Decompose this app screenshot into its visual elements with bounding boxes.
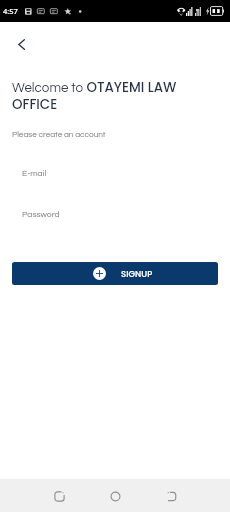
- button[interactable]: E-mail: [12, 160, 218, 186]
- staticText: E-mail: [22, 169, 47, 178]
- button[interactable]: SIGNUP: [12, 262, 218, 285]
- button[interactable]: Home: [100, 481, 130, 511]
- staticText: Welcome to OTAYEMI LAW OFFICE: [12, 78, 194, 114]
- staticText: Password: [22, 210, 60, 219]
- staticText: Please create an account: [12, 130, 106, 138]
- button[interactable]: Recent apps: [44, 481, 74, 511]
- button[interactable]: Password: [12, 201, 218, 227]
- button[interactable]: Back: [8, 31, 34, 57]
- button[interactable]: Back: [157, 481, 187, 511]
- staticText: 4:57: [3, 6, 18, 16]
- staticText: SIGNUP: [121, 268, 153, 280]
